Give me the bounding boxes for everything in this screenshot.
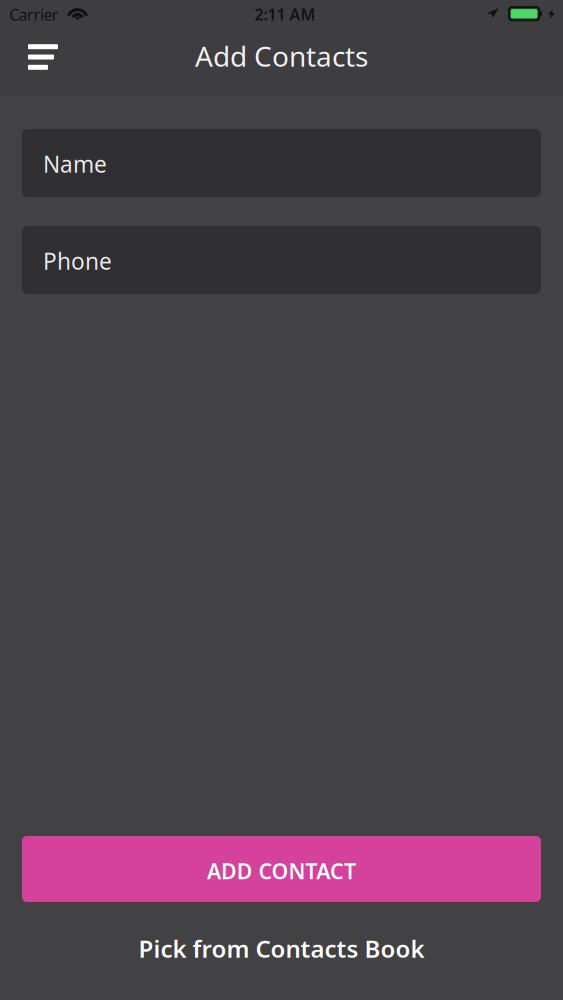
staticText: Carrier (9, 4, 59, 25)
button[interactable]: ADD CONTACT (22, 836, 541, 902)
button[interactable]: Name (22, 129, 541, 197)
staticText: Pick from Contacts Book (138, 933, 424, 964)
button[interactable]: Pick from Contacts Book (81, 921, 481, 975)
staticText: Name (43, 149, 107, 179)
button[interactable]: Phone (22, 226, 541, 294)
staticText: ADD CONTACT (207, 857, 356, 885)
staticText: Phone (43, 246, 112, 276)
staticText: 2:11 AM (254, 4, 315, 25)
staticText: Add Contacts (195, 37, 368, 75)
button[interactable]: Menu (0, 34, 72, 80)
